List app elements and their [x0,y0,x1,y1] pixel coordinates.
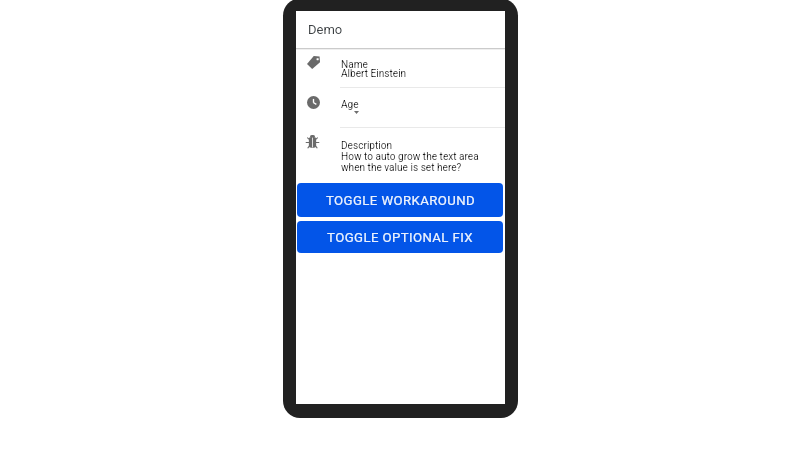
button[interactable] [296,48,505,87]
staticText: when the value is set here? [341,162,462,174]
button[interactable]: TOGGLE WORKAROUND [297,183,503,217]
staticText: Albert Einstein [341,68,407,80]
staticText: Demo [308,22,343,37]
button[interactable]: Demo [296,11,505,48]
button[interactable]: TOGGLE OPTIONAL FIX [297,221,503,253]
staticText: TOGGLE WORKAROUND [326,193,475,208]
staticText: TOGGLE OPTIONAL FIX [327,230,473,245]
button[interactable] [296,87,505,127]
button[interactable] [296,127,505,183]
staticText: How to auto grow the text area [341,151,479,163]
staticText: Age [341,99,359,111]
other: Time [307,96,320,109]
staticText: Name [341,59,368,71]
other: Label [307,56,320,69]
staticText: Description [341,140,393,152]
other: Bug report [306,135,319,148]
